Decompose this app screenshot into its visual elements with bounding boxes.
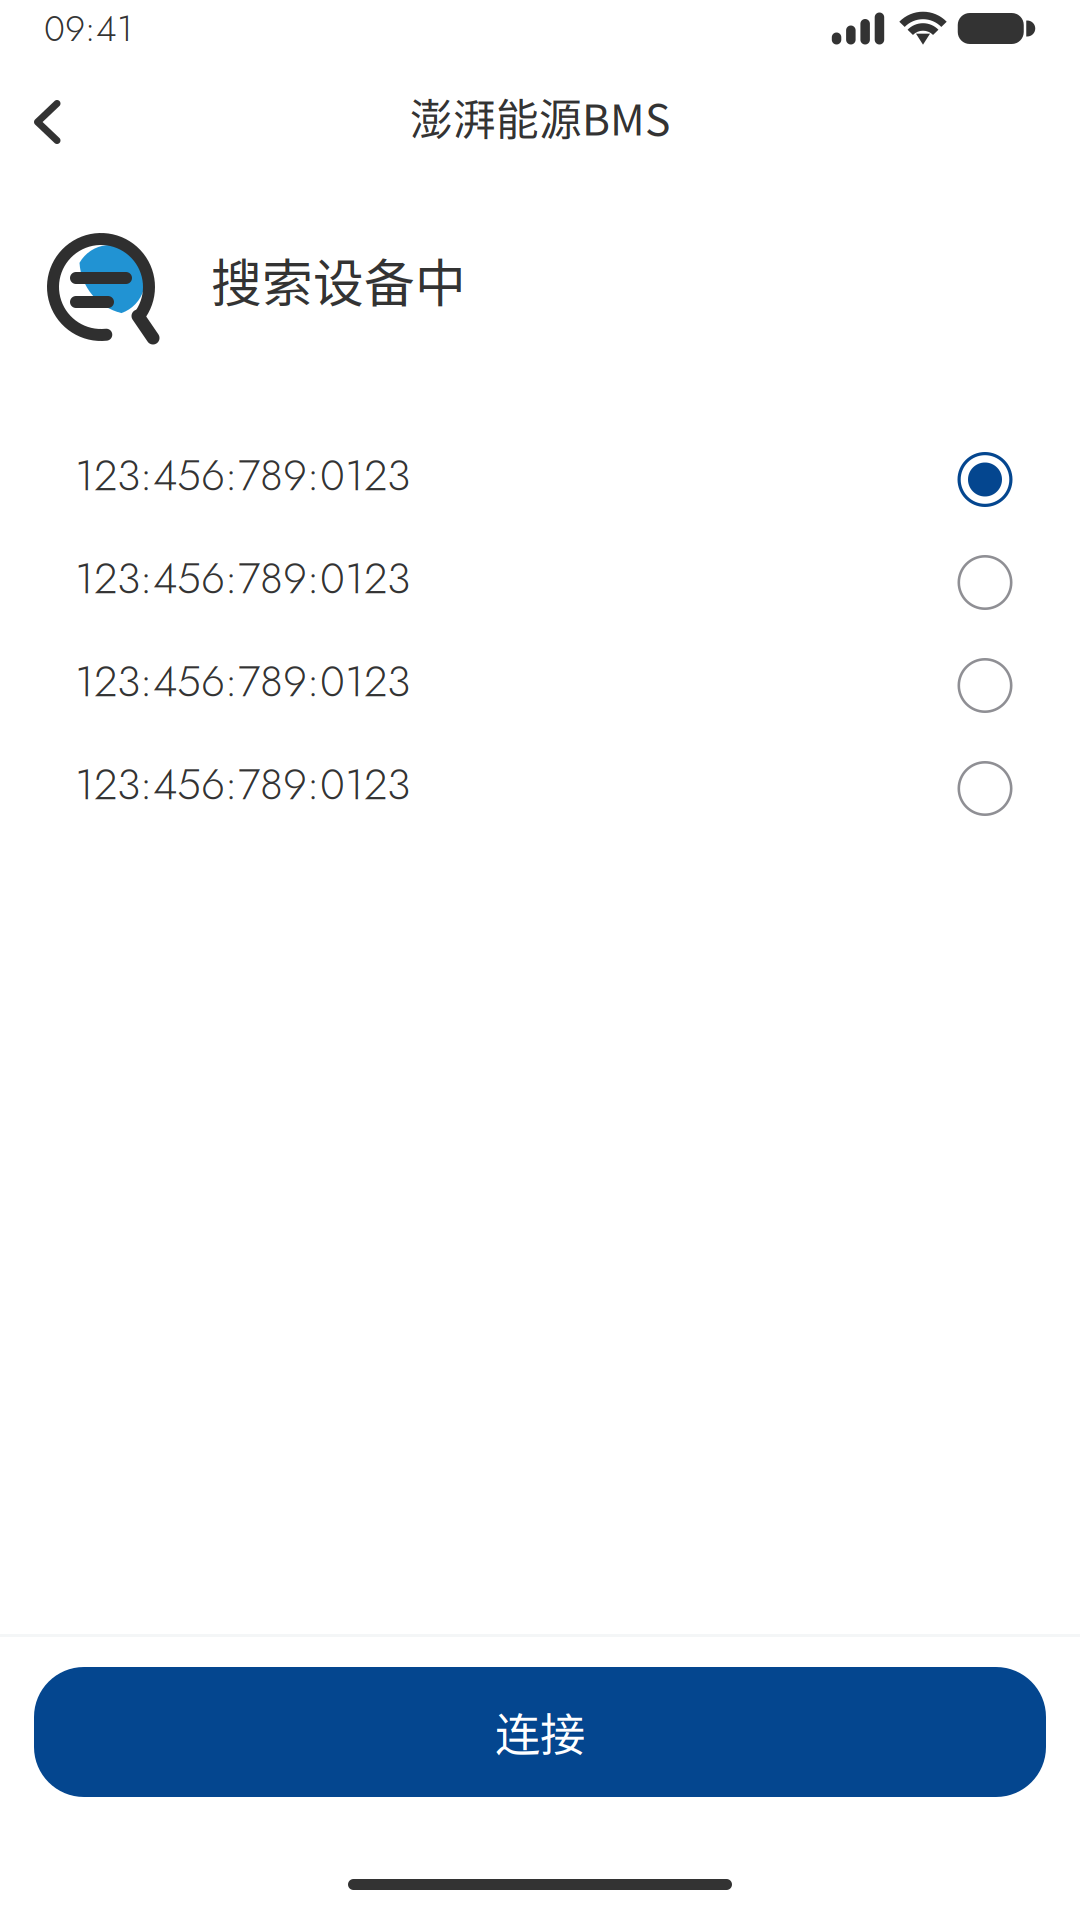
button[interactable]: 123:456:789:0123 [0,733,1080,836]
staticText: 123:456:789:0123 [75,445,410,506]
button[interactable]: 123:456:789:0123 [0,527,1080,630]
staticText: 连接 [495,1699,585,1765]
button[interactable]: Back [0,78,92,170]
staticText: 09:41 [44,2,133,54]
staticText: 搜索设备中 [211,243,466,317]
staticText: 澎湃能源BMS [410,86,670,148]
button[interactable]: 123:456:789:0123 [0,424,1080,527]
staticText: 123:456:789:0123 [75,548,410,609]
button[interactable]: 连接 [34,1667,1046,1797]
staticText: 123:456:789:0123 [75,754,410,815]
staticText: 123:456:789:0123 [75,651,410,712]
button[interactable]: 123:456:789:0123 [0,630,1080,733]
